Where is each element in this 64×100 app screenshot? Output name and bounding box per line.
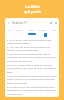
staticText: qui parle bbox=[24, 9, 41, 14]
button[interactable]: 6 Or sans la foi il est impossible de lu… bbox=[7, 85, 57, 95]
button[interactable]: Progress bbox=[28, 33, 36, 35]
staticText: La Bible bbox=[25, 4, 40, 9]
button[interactable]: Settings bbox=[54, 21, 57, 24]
button[interactable]: verset bbox=[16, 29, 23, 32]
button[interactable]: LSG bbox=[7, 29, 11, 32]
button[interactable]: 4 Par la foi Abel offrit a Dieu un sacri… bbox=[7, 63, 57, 73]
button[interactable]: 2 Car c'est par elle que les anciens ont… bbox=[7, 45, 57, 51]
button[interactable]: audio bbox=[28, 29, 34, 32]
staticText: Hebreux 11 bbox=[12, 21, 28, 25]
button[interactable]: 1 Or la foi est une ferme assurance des … bbox=[7, 38, 57, 44]
button[interactable]: note bbox=[52, 29, 57, 32]
button[interactable]: Back bbox=[7, 21, 10, 24]
button[interactable]: Bookmark bbox=[49, 21, 52, 24]
button[interactable]: 3 Par la foi nous reconnaissons que le m… bbox=[7, 52, 57, 62]
button[interactable]: partage bbox=[38, 29, 47, 32]
button[interactable]: 5 Par la foi Enoch fut enleve pour qu'il… bbox=[7, 74, 57, 84]
button[interactable]: Play bbox=[44, 33, 47, 37]
